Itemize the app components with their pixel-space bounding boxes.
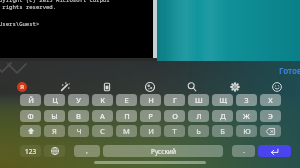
button[interactable]: Е	[116, 94, 137, 106]
staticText: Ы	[51, 111, 58, 121]
button[interactable]: У	[68, 94, 89, 106]
staticText: Ж	[243, 111, 250, 121]
button[interactable]: Т	[164, 125, 185, 137]
staticText: Я	[20, 83, 25, 91]
button[interactable]: ,	[74, 145, 100, 157]
button[interactable]: Готово	[279, 65, 300, 76]
staticText: Н	[148, 95, 154, 105]
staticText: Щ	[219, 95, 227, 105]
staticText: Т	[172, 126, 177, 136]
staticText: Э	[268, 111, 273, 121]
staticText: З	[244, 95, 249, 105]
button[interactable]: Б	[212, 125, 233, 137]
button[interactable]: 123	[20, 145, 41, 157]
button[interactable]: Э	[260, 110, 281, 122]
staticText: Л	[196, 111, 202, 121]
staticText: Готово	[279, 65, 300, 76]
staticText: И	[148, 126, 154, 136]
button[interactable]: Щ	[212, 94, 233, 106]
button[interactable]: Г	[164, 94, 185, 106]
staticText: Я	[52, 126, 57, 136]
button[interactable]: Ч	[68, 125, 89, 137]
button[interactable]: .	[232, 145, 255, 157]
staticText: К	[100, 95, 105, 105]
button[interactable]: И	[140, 125, 161, 137]
button[interactable]: Shift	[20, 125, 41, 137]
button[interactable]: О	[164, 110, 185, 122]
button[interactable]: Ь	[188, 125, 209, 137]
button[interactable]: Stickers	[144, 81, 156, 93]
staticText: О	[172, 111, 178, 121]
button[interactable]: Settings	[229, 81, 241, 93]
button[interactable]: Х	[260, 94, 281, 106]
button[interactable]: Enter	[258, 145, 291, 157]
staticText: Ш	[195, 95, 203, 105]
button[interactable]: З	[236, 94, 257, 106]
staticText: Ч	[76, 126, 82, 136]
staticText: Д	[220, 111, 226, 121]
staticText: 123	[25, 147, 37, 156]
button[interactable]: Yandex	[17, 82, 27, 92]
staticText: pyright (c) 2015 Microsoft Corpor	[0, 0, 110, 4]
button[interactable]: Д	[212, 110, 233, 122]
button[interactable]: П	[116, 110, 137, 122]
button[interactable]: Ш	[188, 94, 209, 106]
staticText: Г	[173, 95, 177, 105]
staticText: ,	[86, 146, 88, 156]
button[interactable]: Ы	[44, 110, 65, 122]
staticText: Б	[220, 126, 225, 136]
button[interactable]: Clipboard	[101, 81, 113, 93]
staticText: Ф	[27, 111, 34, 121]
staticText: П	[124, 111, 130, 121]
staticText: Й	[28, 95, 34, 105]
staticText: Ю	[243, 126, 251, 136]
button[interactable]: Я	[44, 125, 65, 137]
button[interactable]: Magic replace	[59, 81, 71, 93]
button[interactable]: Ц	[44, 94, 65, 106]
button[interactable]: Backspace	[260, 125, 281, 137]
button[interactable]: Search	[186, 81, 198, 93]
button[interactable]: Л	[188, 110, 209, 122]
staticText: Ь	[196, 126, 201, 136]
staticText: Е	[124, 95, 129, 105]
button[interactable]: М	[116, 125, 137, 137]
staticText: Русский	[151, 147, 176, 156]
staticText: А	[100, 111, 105, 121]
staticText: Users\Guest>	[0, 20, 40, 28]
staticText: С	[100, 126, 105, 136]
button[interactable]: Й	[20, 94, 41, 106]
button[interactable]: С	[92, 125, 113, 137]
staticText: Р	[148, 111, 153, 121]
button[interactable]: А	[92, 110, 113, 122]
staticText: Х	[268, 95, 273, 105]
button[interactable]: В	[68, 110, 89, 122]
button[interactable]: Русский	[103, 145, 223, 157]
button[interactable]: Р	[140, 110, 161, 122]
button[interactable]: Switch language	[44, 145, 65, 157]
button[interactable]: Ю	[236, 125, 257, 137]
staticText: В	[76, 111, 81, 121]
button[interactable]: Ж	[236, 110, 257, 122]
button[interactable]: Emoji	[271, 81, 283, 93]
button[interactable]: Н	[140, 94, 161, 106]
staticText: .	[243, 146, 245, 156]
staticText: rights reserved.	[0, 3, 57, 11]
button[interactable]: Ф	[20, 110, 41, 122]
staticText: У	[76, 95, 81, 105]
staticText: М	[123, 126, 130, 136]
staticText: Ц	[52, 95, 58, 105]
button[interactable]: К	[92, 94, 113, 106]
